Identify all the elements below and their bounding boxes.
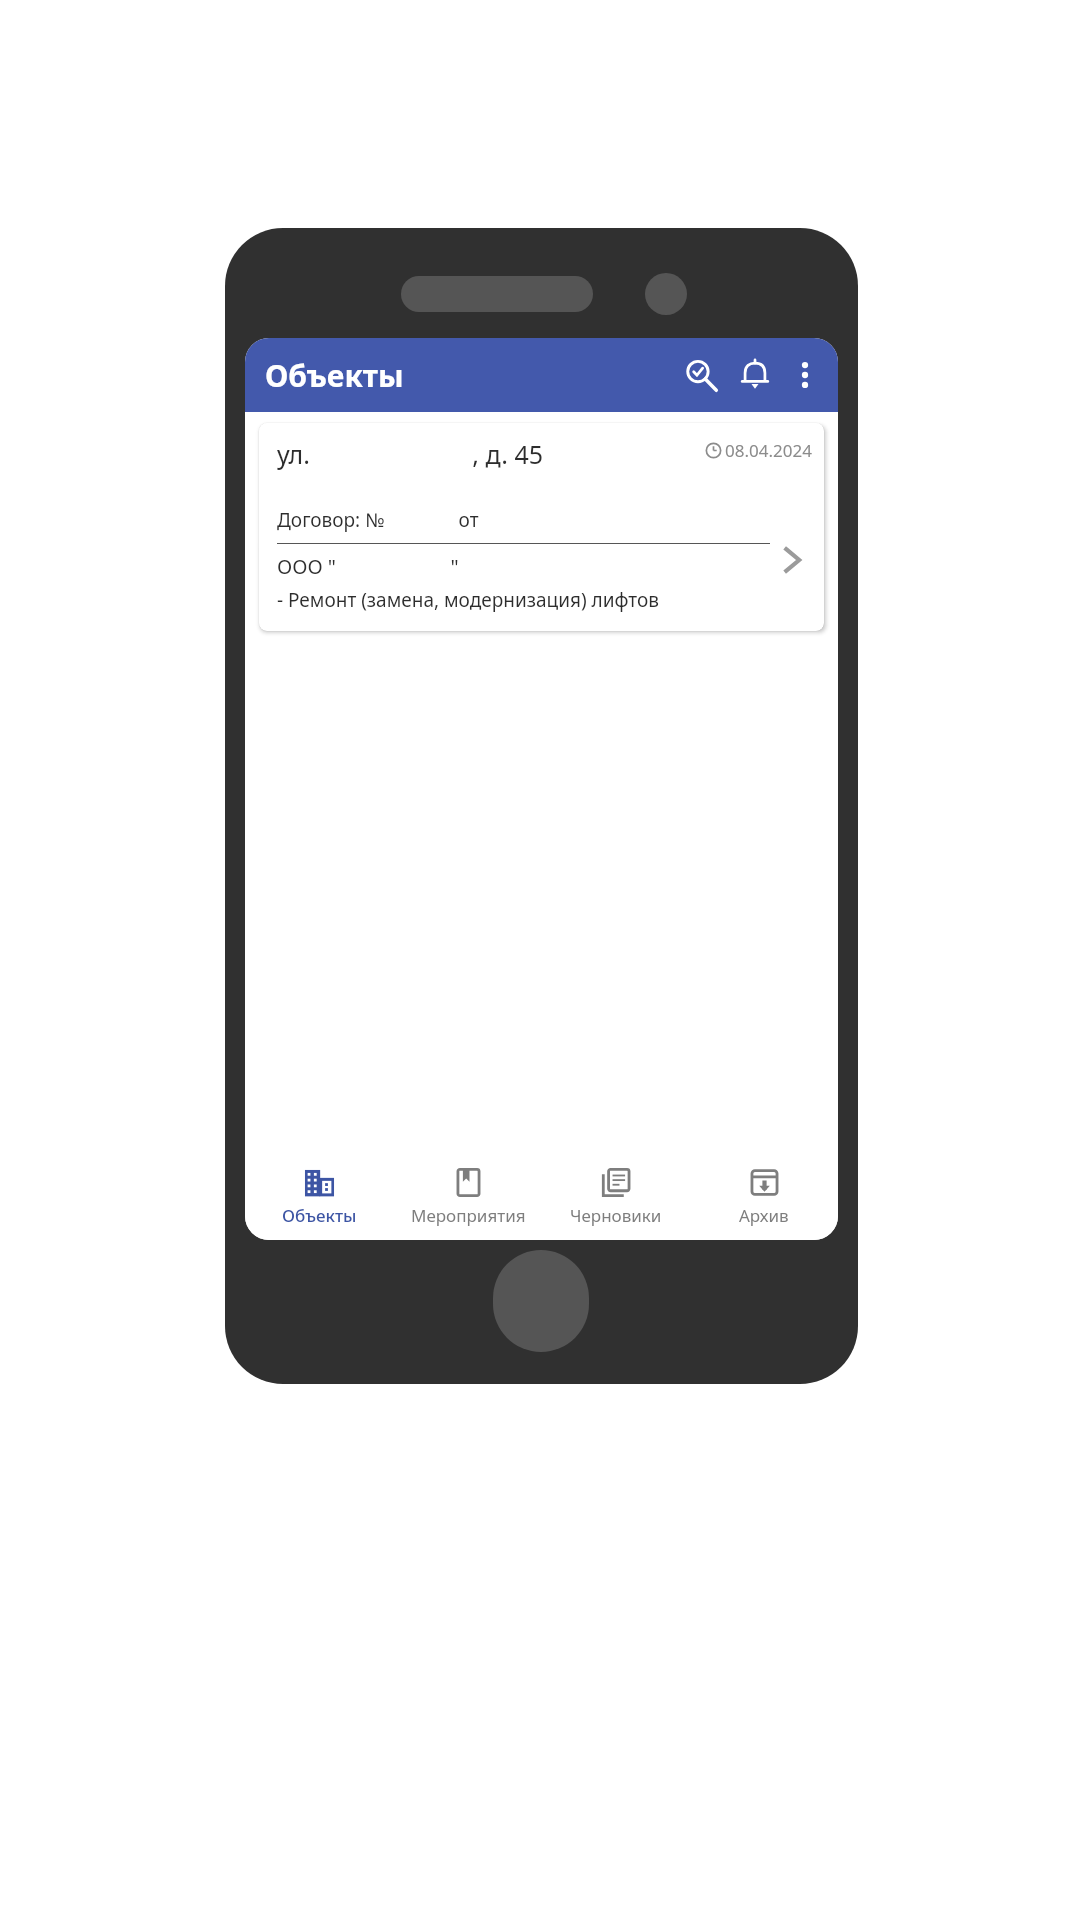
button[interactable]: More options — [782, 352, 828, 398]
staticText: Объекты — [282, 1204, 357, 1227]
button[interactable]: Мероприятия — [394, 1166, 542, 1227]
button[interactable]: Черновики — [542, 1166, 690, 1227]
staticText: ул. , д. 45 — [277, 437, 544, 471]
button[interactable]: Search — [674, 348, 728, 402]
staticText: - Ремонт (замена, модернизация) лифтов — [277, 587, 659, 613]
staticText: Черновики — [570, 1204, 662, 1227]
button[interactable]: ул. , д. 45 — [259, 423, 824, 631]
staticText: ООО " " — [277, 553, 459, 580]
staticText: 08.04.2024 — [725, 439, 812, 462]
staticText: Мероприятия — [411, 1204, 526, 1227]
button[interactable]: Архив — [690, 1166, 838, 1227]
staticText: Объекты — [265, 355, 404, 396]
staticText: Договор: № от — [277, 507, 479, 533]
button[interactable]: Notifications — [728, 348, 782, 402]
staticText: Архив — [739, 1204, 789, 1227]
button[interactable]: Объекты — [245, 1166, 394, 1227]
